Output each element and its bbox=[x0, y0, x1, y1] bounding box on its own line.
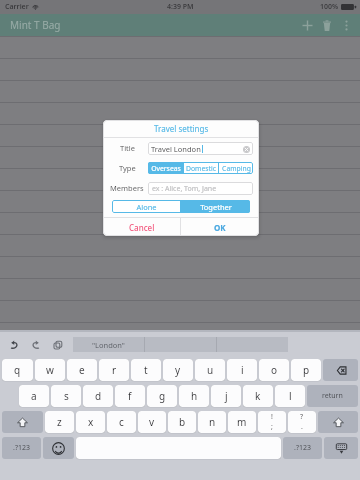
button[interactable]: ex : Alice, Tom, Jane bbox=[148, 182, 253, 195]
staticText: r bbox=[112, 363, 117, 377]
staticText: Mint T Bag bbox=[10, 18, 61, 32]
button[interactable]: n bbox=[198, 411, 226, 433]
button[interactable]: Travel London bbox=[148, 142, 253, 155]
button[interactable]: Domestic bbox=[184, 162, 218, 174]
button[interactable]: Add bbox=[297, 15, 317, 35]
staticText: 100% bbox=[320, 2, 339, 12]
staticText: d bbox=[95, 389, 102, 403]
button[interactable]: Camping bbox=[219, 162, 253, 174]
button[interactable]: m bbox=[228, 411, 256, 433]
staticText: j bbox=[225, 389, 228, 403]
staticText: u bbox=[207, 363, 214, 377]
staticText: Domestic bbox=[186, 164, 216, 173]
staticText: s bbox=[64, 389, 69, 403]
staticText: p bbox=[303, 363, 310, 377]
button[interactable]: i bbox=[227, 359, 257, 381]
button[interactable]: u bbox=[195, 359, 225, 381]
button[interactable]: Redo bbox=[25, 334, 47, 356]
button[interactable]: d bbox=[83, 385, 113, 407]
button[interactable]: .?123 bbox=[2, 437, 41, 459]
button[interactable]: Delete bbox=[317, 15, 337, 35]
button[interactable]: Hide keyboard bbox=[324, 437, 358, 459]
button[interactable]: r bbox=[99, 359, 129, 381]
staticText: z bbox=[57, 415, 62, 429]
staticText: return bbox=[322, 391, 343, 401]
button[interactable]: ! bbox=[258, 411, 286, 433]
staticText: m bbox=[237, 415, 247, 429]
button[interactable]: q bbox=[2, 359, 33, 381]
button[interactable]: h bbox=[179, 385, 209, 407]
staticText: .?123 bbox=[13, 443, 30, 453]
staticText: Type bbox=[119, 163, 136, 173]
button[interactable]: l bbox=[275, 385, 305, 407]
staticText: x bbox=[88, 415, 94, 429]
staticText: Overseas bbox=[151, 164, 181, 173]
button[interactable]: c bbox=[107, 411, 136, 433]
button[interactable]: Backspace bbox=[323, 359, 358, 381]
staticText: l bbox=[289, 389, 292, 403]
staticText: ex : Alice, Tom, Jane bbox=[152, 184, 217, 194]
staticText: k bbox=[255, 389, 261, 403]
button[interactable]: g bbox=[147, 385, 177, 407]
button[interactable]: Shift bbox=[2, 411, 43, 433]
staticText: b bbox=[179, 415, 186, 429]
button[interactable]: j bbox=[211, 385, 241, 407]
button[interactable]: Emoji bbox=[43, 437, 74, 459]
button[interactable]: x bbox=[76, 411, 105, 433]
staticText: g bbox=[159, 389, 166, 403]
staticText: y bbox=[175, 363, 181, 377]
staticText: .?123 bbox=[294, 443, 311, 453]
button[interactable]: Overseas bbox=[148, 162, 183, 174]
button[interactable]: OK bbox=[181, 218, 259, 236]
button[interactable]: w bbox=[35, 359, 65, 381]
staticText: Travel London bbox=[151, 144, 201, 154]
button[interactable]: Cancel bbox=[103, 218, 180, 236]
button[interactable]: Clear text bbox=[243, 146, 250, 153]
staticText: c bbox=[119, 415, 124, 429]
button[interactable]: a bbox=[19, 385, 49, 407]
button[interactable]: f bbox=[115, 385, 145, 407]
staticText: h bbox=[191, 389, 198, 403]
staticText: "London" bbox=[92, 340, 125, 350]
staticText: ? bbox=[300, 412, 304, 422]
staticText: Members bbox=[110, 183, 144, 193]
staticText: q bbox=[14, 363, 21, 377]
button[interactable]: b bbox=[168, 411, 196, 433]
staticText: o bbox=[271, 363, 278, 377]
staticText: t bbox=[144, 363, 148, 377]
button[interactable]: t bbox=[131, 359, 161, 381]
staticText: n bbox=[209, 415, 216, 429]
staticText: ; bbox=[271, 422, 273, 432]
staticText: Carrier bbox=[5, 2, 29, 12]
staticText: a bbox=[31, 389, 37, 403]
button[interactable]: .?123 bbox=[283, 437, 322, 459]
button[interactable]: k bbox=[243, 385, 273, 407]
button[interactable]: s bbox=[51, 385, 81, 407]
staticText: OK bbox=[214, 222, 226, 233]
button[interactable]: o bbox=[259, 359, 289, 381]
staticText: f bbox=[128, 389, 132, 403]
button[interactable]: ? bbox=[288, 411, 316, 433]
staticText: Cancel bbox=[129, 222, 155, 233]
button[interactable]: p bbox=[291, 359, 321, 381]
staticText: ! bbox=[271, 412, 273, 422]
button[interactable]: Shift bbox=[318, 411, 358, 433]
button[interactable]: v bbox=[138, 411, 166, 433]
button[interactable]: Undo bbox=[3, 334, 25, 356]
staticText: Travel settings bbox=[154, 123, 209, 134]
button[interactable]: Paste bbox=[47, 334, 69, 356]
staticText: Alone bbox=[136, 202, 157, 212]
button[interactable]: More options bbox=[337, 16, 355, 34]
staticText: . bbox=[301, 422, 303, 432]
button[interactable]: Alone bbox=[112, 200, 180, 213]
button[interactable]: return bbox=[307, 385, 358, 407]
button[interactable]: y bbox=[163, 359, 193, 381]
staticText: v bbox=[149, 415, 155, 429]
button[interactable]: z bbox=[45, 411, 74, 433]
button[interactable]: Together bbox=[181, 200, 250, 213]
button[interactable]: "London" bbox=[73, 337, 144, 352]
button[interactable]: e bbox=[67, 359, 97, 381]
